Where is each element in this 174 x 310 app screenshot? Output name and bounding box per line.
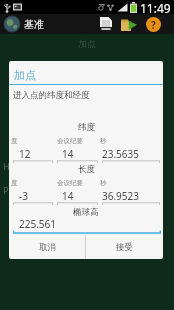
button[interactable]: Open file (119, 14, 139, 34)
staticText: 会议纪要 (57, 137, 83, 145)
staticText: 秒 (100, 137, 107, 145)
staticText: 椭球高 (73, 207, 99, 218)
staticText: 秒 (100, 179, 107, 187)
staticText: ? (151, 18, 156, 32)
button[interactable]: 取消 (9, 235, 85, 259)
staticText: -3 (19, 189, 28, 203)
staticText: 23.5635 (102, 147, 139, 161)
staticText: 度 (11, 137, 18, 145)
staticText: 接受 (116, 242, 133, 253)
staticText: 14 (62, 147, 74, 161)
staticText: 加点 (14, 68, 36, 82)
staticText: 度 (11, 179, 18, 187)
staticText: 取消 (39, 242, 56, 253)
staticText: 225.561 (19, 217, 56, 231)
staticText: H (3, 160, 10, 172)
staticText: 进入点的纬度和经度 (13, 90, 90, 101)
staticText: P (3, 184, 9, 196)
staticText: 会议纪要 (57, 179, 83, 187)
button[interactable]: 接受 (86, 235, 163, 259)
staticText: 基准 (24, 18, 44, 31)
staticText: 加点 (78, 38, 96, 49)
button[interactable]: Text file (96, 14, 116, 34)
staticText: 长度 (78, 164, 95, 175)
staticText: 36.9523 (102, 189, 139, 203)
staticText: 12 (19, 147, 31, 161)
staticText: 11:49 (140, 0, 171, 14)
staticText: 纬度 (78, 122, 95, 133)
button[interactable]: Help (143, 14, 163, 34)
staticText: 14 (62, 189, 74, 203)
